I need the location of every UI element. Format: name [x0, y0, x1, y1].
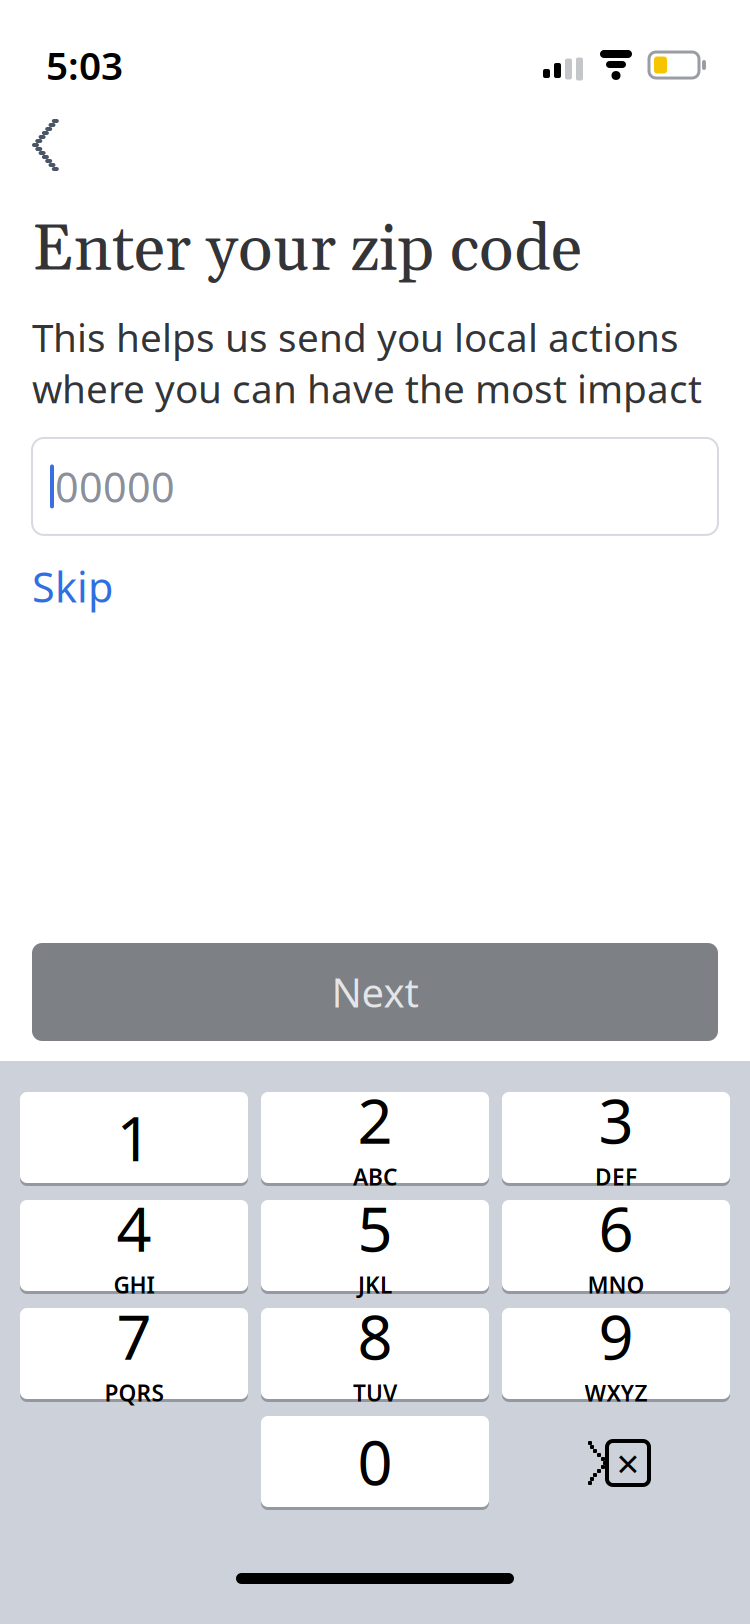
staticText: 0 — [357, 1421, 392, 1502]
button[interactable]: Zip code — [32, 438, 718, 535]
staticText: GHI — [113, 1270, 154, 1300]
staticText: 5 — [357, 1187, 392, 1269]
button[interactable]: 3 — [502, 1092, 730, 1186]
staticText: 9 — [598, 1295, 633, 1377]
staticText: 5:03 — [46, 39, 123, 91]
button[interactable]: 6 — [502, 1200, 730, 1294]
button[interactable]: 7 — [20, 1308, 248, 1402]
staticText: JKL — [358, 1270, 392, 1300]
button[interactable]: 1 — [20, 1092, 248, 1186]
staticText: This helps us send you local actions whe… — [32, 311, 702, 414]
button[interactable]: Back — [20, 106, 98, 184]
button[interactable]: 2 — [261, 1092, 489, 1186]
staticText: Enter your zip code — [32, 210, 582, 291]
button[interactable]: 0 — [261, 1416, 489, 1510]
staticText: Skip — [32, 559, 113, 614]
staticText: 3 — [598, 1079, 633, 1161]
staticText: 7 — [116, 1295, 151, 1377]
button[interactable]: 4 — [20, 1200, 248, 1294]
staticText: × — [616, 1436, 639, 1489]
button[interactable]: Skip — [32, 547, 133, 626]
staticText: 4 — [116, 1187, 151, 1269]
staticText: ABC — [353, 1162, 397, 1192]
staticText: 6 — [598, 1187, 633, 1269]
button[interactable]: 8 — [261, 1308, 489, 1402]
staticText: 8 — [357, 1295, 392, 1377]
staticText: 1 — [116, 1097, 151, 1178]
staticText: DEF — [595, 1162, 637, 1192]
button[interactable]: 5 — [261, 1200, 489, 1294]
staticText: 00000 — [55, 459, 175, 514]
staticText: PQRS — [104, 1378, 163, 1408]
button[interactable]: 9 — [502, 1308, 730, 1402]
button[interactable]: Delete — [502, 1416, 730, 1510]
staticText: TUV — [353, 1378, 397, 1408]
staticText: 2 — [357, 1079, 392, 1161]
button[interactable]: Next — [32, 943, 718, 1041]
staticText: WXYZ — [584, 1378, 647, 1408]
staticText: Next — [331, 965, 418, 1018]
staticText: MNO — [587, 1270, 644, 1300]
